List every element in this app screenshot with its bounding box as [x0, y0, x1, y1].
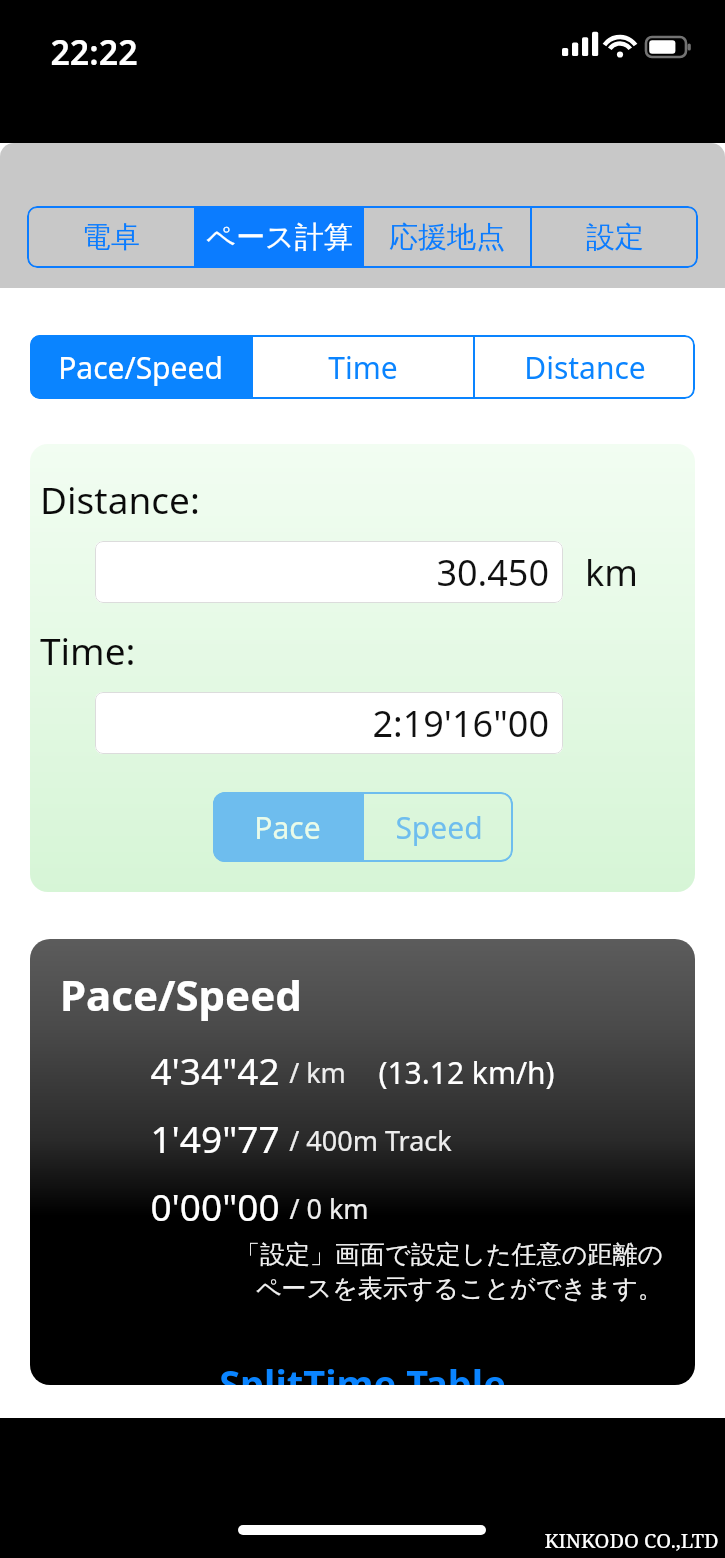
button[interactable]: Distance [475, 335, 695, 399]
staticText: Pace [254, 807, 321, 848]
staticText: 1'49"77 [150, 1113, 280, 1163]
button[interactable]: 設定 [532, 206, 698, 268]
staticText: 「設定」画面で設定した任意の距離の ペースを表示することができます。 [30, 1239, 663, 1305]
staticText: ペース計算 [206, 219, 353, 256]
staticText: 22:22 [50, 29, 138, 75]
staticText: km [585, 548, 638, 597]
button[interactable]: 2:19'16"00 [95, 692, 563, 754]
staticText: 30.450 [436, 548, 549, 597]
button[interactable]: 電卓 [27, 206, 194, 268]
staticText: Distance [524, 347, 646, 388]
staticText: 電卓 [82, 219, 140, 256]
staticText: / km [289, 1054, 346, 1091]
staticText: (13.12 km/h) [378, 1052, 555, 1093]
staticText: Time: [40, 625, 136, 675]
button[interactable]: Pace/Speed [30, 335, 251, 399]
staticText: Distance: [40, 474, 200, 524]
staticText: Pace/Speed [58, 347, 223, 388]
staticText: / 400m Track [289, 1122, 452, 1159]
button[interactable]: ペース計算 [196, 206, 362, 268]
staticText: Speed [395, 807, 483, 848]
button[interactable]: Pace [213, 792, 362, 862]
staticText: SplitTime Table [219, 1357, 506, 1385]
staticText: Pace/Speed [60, 966, 302, 1023]
button[interactable]: 30.450 [95, 541, 563, 603]
button[interactable]: Time [253, 335, 473, 399]
button[interactable]: Speed [364, 792, 513, 862]
staticText: 設定 [586, 219, 644, 256]
button[interactable]: 応援地点 [364, 206, 530, 268]
staticText: Time [328, 347, 398, 388]
staticText: 0'00"00 [150, 1181, 280, 1231]
staticText: 2:19'16"00 [372, 699, 549, 748]
staticText: / 0 km [289, 1190, 369, 1227]
staticText: 応援地点 [389, 219, 505, 256]
staticText: 4'34"42 [150, 1045, 280, 1095]
staticText: KINKODO CO.,LTD [544, 1527, 719, 1554]
button[interactable]: SplitTime Table [30, 1357, 695, 1385]
